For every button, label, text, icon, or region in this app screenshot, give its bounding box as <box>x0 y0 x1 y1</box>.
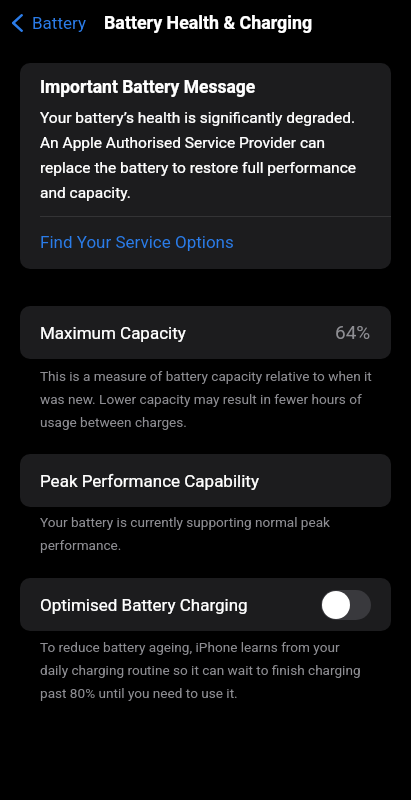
button[interactable]: Maximum Capacity <box>20 306 391 359</box>
button[interactable]: Find Your Service Options <box>20 217 391 269</box>
staticText: Your battery is currently supporting nor… <box>40 509 330 555</box>
staticText: Battery <box>32 12 86 34</box>
button[interactable]: Optimised Battery Charging <box>20 578 391 631</box>
button[interactable]: Optimised Battery Charging <box>321 590 371 620</box>
staticText: 64% <box>335 322 371 344</box>
staticText: Find Your Service Options <box>40 231 234 253</box>
staticText: To reduce battery ageing, iPhone learns … <box>40 634 361 703</box>
staticText: Peak Performance Capability <box>40 470 259 492</box>
staticText: Maximum Capacity <box>40 322 186 344</box>
staticText: Important Battery Message <box>40 76 256 98</box>
button[interactable]: Peak Performance Capability <box>20 454 391 507</box>
staticText: Optimised Battery Charging <box>40 594 248 616</box>
staticText: This is a measure of battery capacity re… <box>40 363 372 432</box>
button[interactable]: Back to Battery <box>0 5 94 41</box>
staticText: Your battery’s health is significantly d… <box>40 104 357 204</box>
staticText: Battery Health & Charging <box>104 12 313 34</box>
